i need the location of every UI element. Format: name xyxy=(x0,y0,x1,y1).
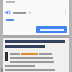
button[interactable]: More options xyxy=(5,9,67,16)
button[interactable] xyxy=(36,26,67,33)
other: More options xyxy=(64,9,67,16)
